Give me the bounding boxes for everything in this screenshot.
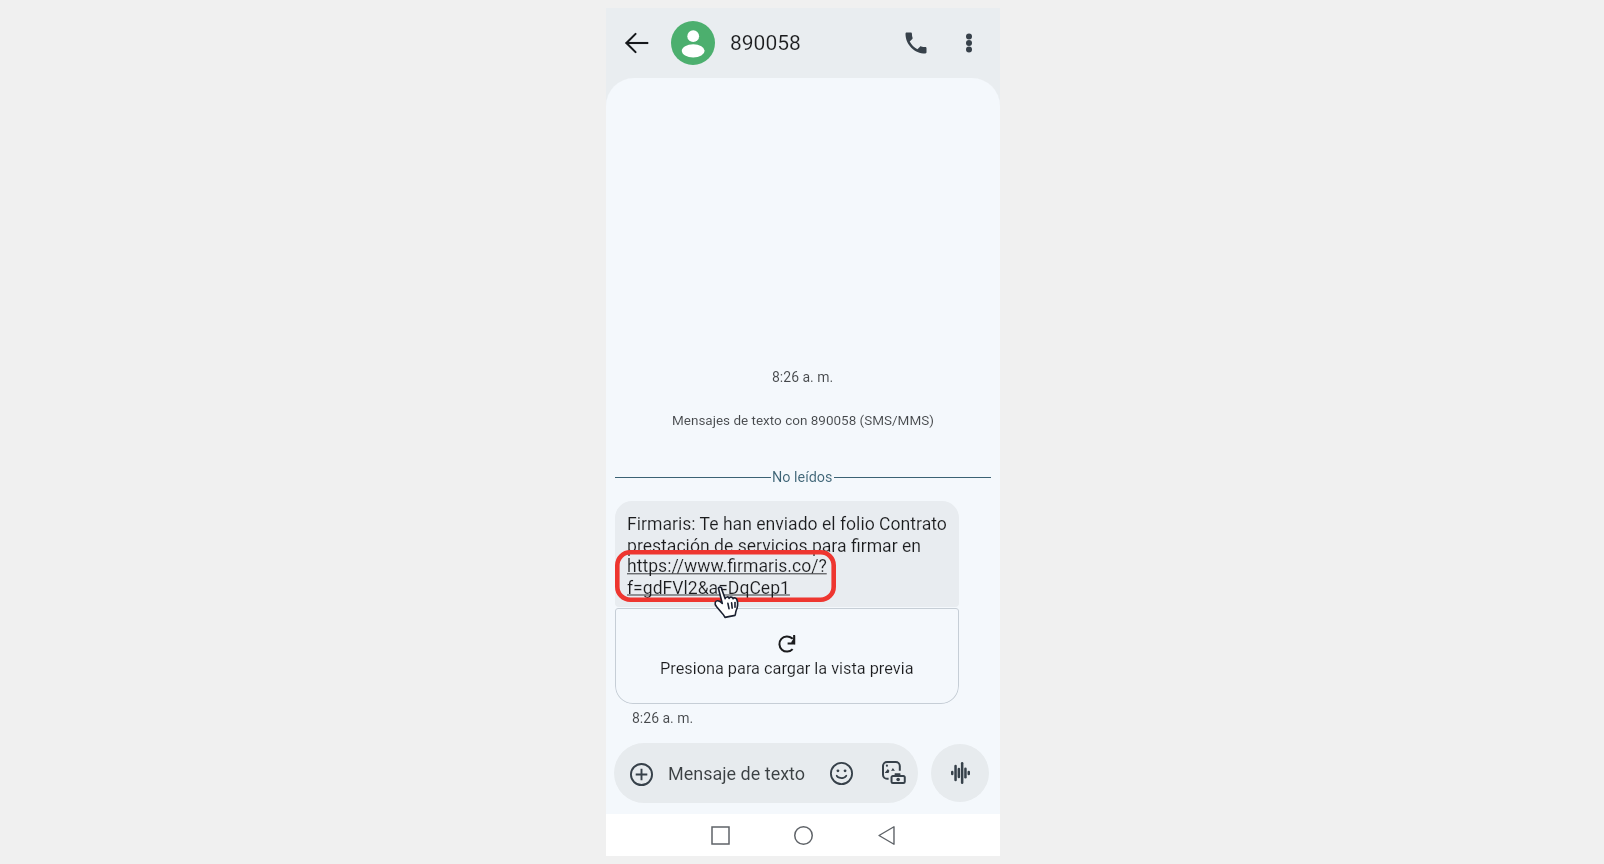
button[interactable]: Contact avatar bbox=[671, 21, 715, 65]
button[interactable]: Back bbox=[619, 25, 655, 61]
button[interactable]: Call bbox=[898, 25, 934, 61]
staticText: 890058 bbox=[730, 31, 801, 56]
button[interactable]: Add attachment bbox=[614, 743, 918, 803]
staticText: No leídos bbox=[772, 469, 833, 486]
staticText: Mensaje de texto bbox=[668, 763, 806, 784]
button[interactable]: More options bbox=[951, 25, 987, 61]
staticText: https://www.firmaris.co/?f=gdFVl2&a=DqCe… bbox=[627, 556, 949, 598]
button[interactable]: Firmaris: Te han enviado el folio Contra… bbox=[615, 501, 959, 607]
button[interactable]: Voice message bbox=[931, 744, 989, 802]
button[interactable]: Back bbox=[868, 817, 904, 853]
button[interactable]: Recent apps bbox=[702, 817, 738, 853]
staticText: Mensajes de texto con 890058 (SMS/MMS) bbox=[672, 412, 934, 428]
button[interactable]: Attach image bbox=[878, 757, 910, 789]
button[interactable]: Emoji bbox=[825, 757, 857, 789]
staticText: Firmaris: Te han enviado el folio Contra… bbox=[627, 514, 949, 556]
button[interactable]: Presiona para cargar la vista previa bbox=[615, 608, 959, 704]
button[interactable]: Add attachment bbox=[625, 758, 657, 790]
staticText: Presiona para cargar la vista previa bbox=[660, 659, 914, 678]
staticText: 8:26 a. m. bbox=[632, 710, 694, 726]
staticText: 8:26 a. m. bbox=[772, 369, 834, 385]
button[interactable]: Home bbox=[785, 817, 821, 853]
